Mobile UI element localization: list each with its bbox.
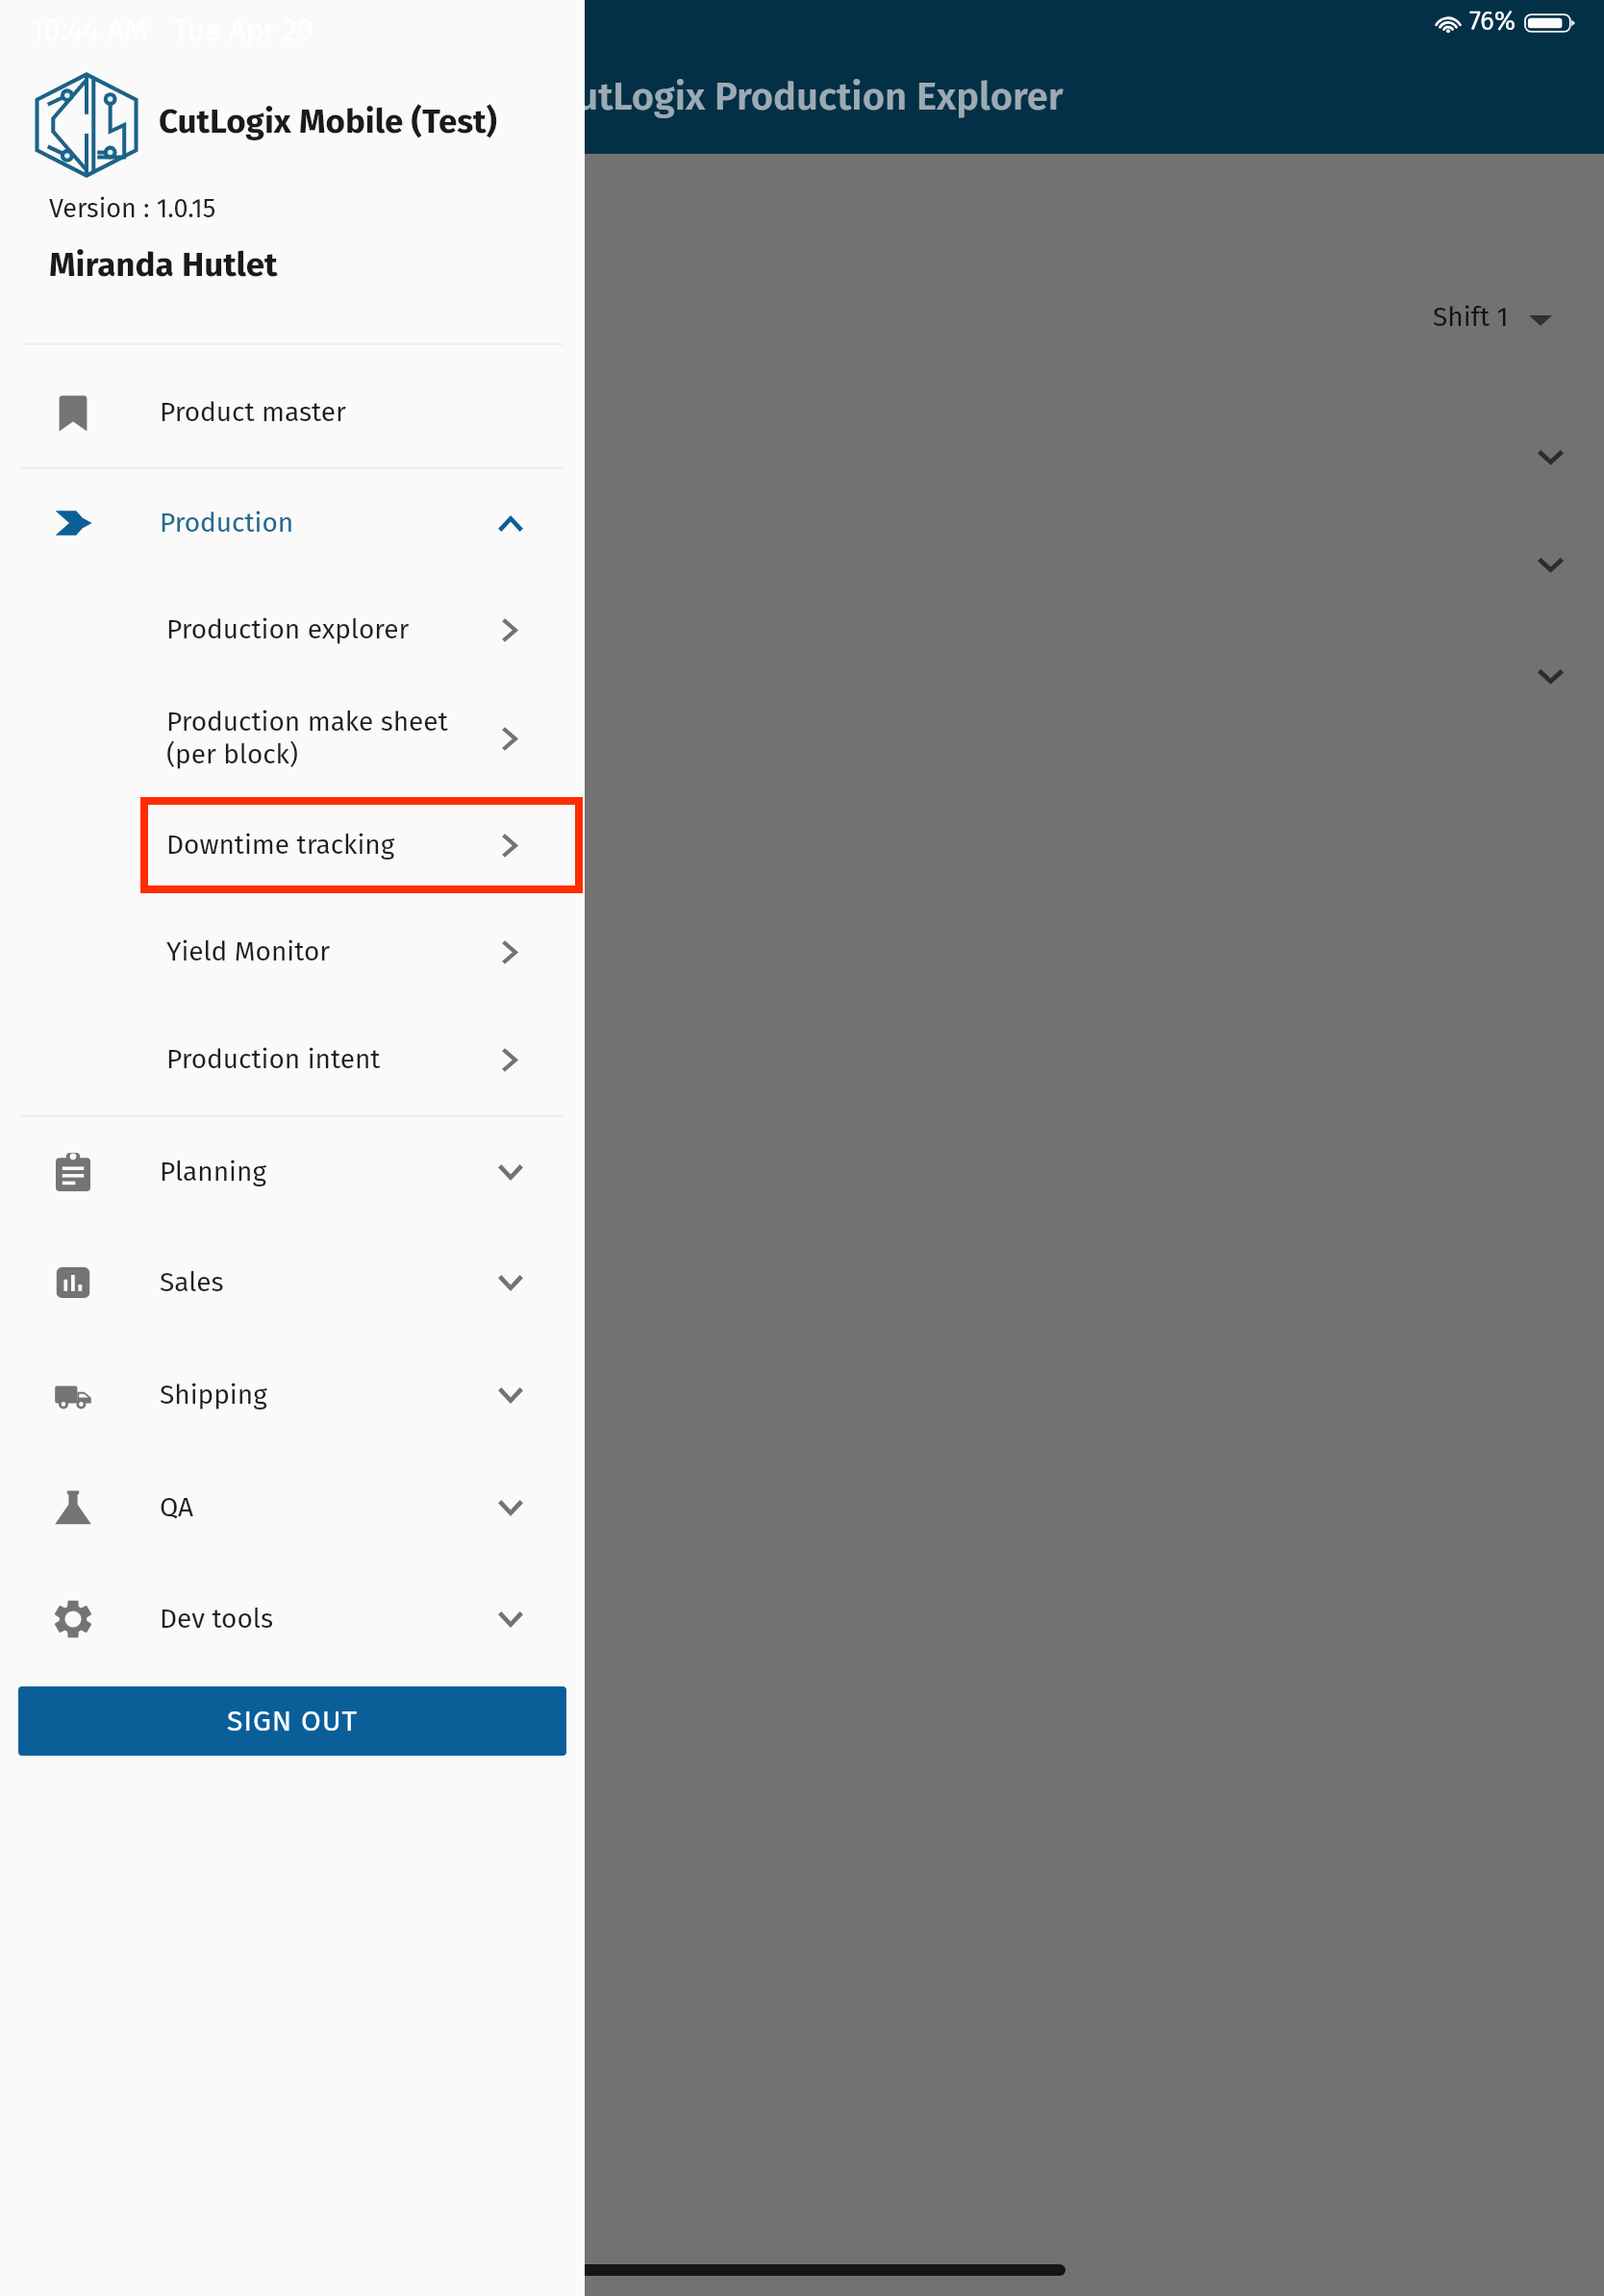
button[interactable]: Production intent (0, 1005, 585, 1114)
staticText: Dev tools (160, 1603, 274, 1635)
button[interactable]: SIGN OUT (18, 1686, 566, 1756)
staticText: Production explorer (166, 613, 410, 646)
button[interactable]: QA (0, 1452, 585, 1563)
button[interactable]: Expand section (1529, 437, 1571, 479)
staticText: Shift 1 (1433, 301, 1509, 334)
staticText: Version : 1.0.15 (49, 193, 216, 224)
button[interactable]: Product master (0, 351, 585, 474)
staticText: Production intent (166, 1043, 381, 1076)
staticText: SIGN OUT (227, 1704, 358, 1738)
button[interactable]: Expand section (1529, 656, 1571, 698)
button[interactable]: Shipping (0, 1338, 585, 1452)
staticText: 76% (1469, 6, 1516, 37)
staticText: CutLogix Production Explorer (555, 74, 1064, 120)
button[interactable]: Yield Monitor (0, 899, 585, 1005)
staticText: Downtime tracking (166, 829, 395, 861)
button[interactable]: Planning (0, 1117, 585, 1227)
staticText: CutLogix Mobile (Test) (159, 101, 497, 141)
button[interactable]: Dev tools (0, 1563, 585, 1675)
button[interactable]: Shift 1 (1433, 294, 1552, 340)
button[interactable]: Sales (0, 1227, 585, 1338)
staticText: Yield Monitor (166, 936, 331, 968)
staticText: Production make sheet (per block) (166, 706, 448, 771)
staticText: Miranda Hutlet (49, 244, 278, 285)
button[interactable]: Production explorer (0, 578, 585, 682)
staticText: Production (160, 507, 294, 539)
staticText: QA (160, 1491, 194, 1524)
button[interactable]: Production (0, 468, 585, 578)
staticText: Planning (160, 1156, 266, 1188)
staticText: Shipping (160, 1379, 267, 1411)
staticText: Sales (160, 1266, 224, 1299)
staticText: Product master (160, 396, 346, 429)
button[interactable]: Production make sheet (per block) (0, 684, 585, 793)
button[interactable]: Expand section (1529, 544, 1571, 586)
button[interactable]: Downtime tracking (0, 791, 585, 899)
